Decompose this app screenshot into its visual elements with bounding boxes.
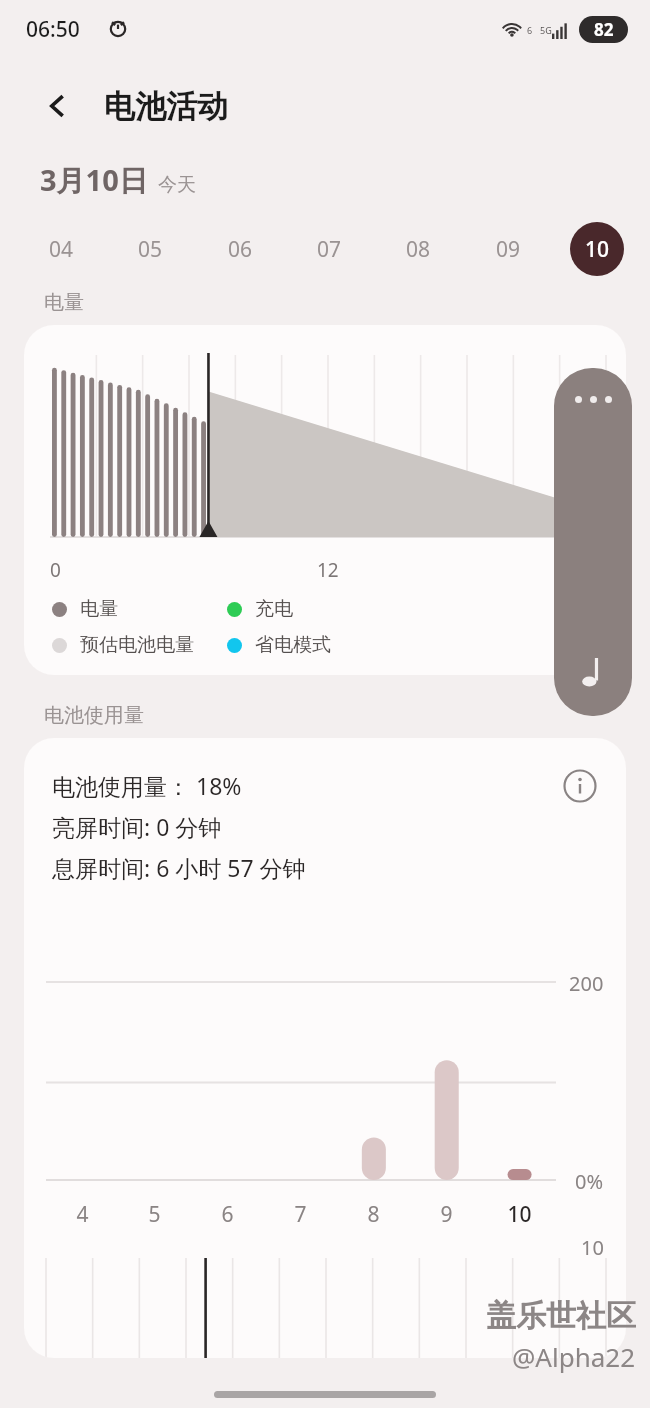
staticText: 电量 bbox=[80, 597, 118, 621]
button[interactable]: 09 bbox=[481, 222, 535, 276]
staticText: 电量 bbox=[44, 290, 84, 315]
button[interactable]: Back bbox=[36, 84, 80, 128]
staticText: 充电 bbox=[255, 597, 293, 621]
staticText: 10 bbox=[585, 235, 610, 264]
button[interactable]: 10 bbox=[570, 222, 624, 276]
staticText: 息屏时间: 6 小时 57 分钟 bbox=[52, 852, 306, 883]
staticText: 预估电池电量 bbox=[80, 633, 194, 657]
staticText: 200 bbox=[569, 970, 604, 997]
button[interactable]: Edge panel bbox=[554, 368, 632, 716]
staticText: 06:50 bbox=[26, 15, 80, 44]
staticText: 4 bbox=[76, 1200, 89, 1229]
button[interactable]: 04 bbox=[34, 222, 88, 276]
staticText: 09 bbox=[496, 235, 521, 264]
staticText: 盖乐世社区 bbox=[486, 1297, 636, 1335]
staticText: 05 bbox=[138, 235, 163, 264]
staticText: @Alpha22 bbox=[512, 1339, 636, 1374]
staticText: 9 bbox=[440, 1200, 453, 1229]
staticText: 3月10日 bbox=[40, 160, 148, 200]
staticText: 8 bbox=[367, 1200, 380, 1229]
staticText: 省电模式 bbox=[255, 633, 331, 657]
staticText: 10 bbox=[581, 1234, 604, 1261]
button[interactable]: 07 bbox=[302, 222, 356, 276]
button[interactable]: 电池使用量： 18% bbox=[24, 738, 626, 1358]
staticText: 5G bbox=[540, 24, 552, 36]
staticText: 6 bbox=[527, 24, 533, 36]
staticText: 10 bbox=[507, 1200, 532, 1229]
staticText: 电池使用量： 18% bbox=[52, 770, 242, 801]
staticText: 0% bbox=[575, 1168, 604, 1195]
staticText: 电池活动 bbox=[104, 87, 228, 126]
button[interactable]: 0 bbox=[24, 325, 626, 675]
staticText: 今天 bbox=[158, 173, 196, 197]
staticText: 6 bbox=[221, 1200, 234, 1229]
staticText: 0 bbox=[50, 557, 61, 583]
staticText: 82 bbox=[594, 18, 614, 41]
staticText: 12 bbox=[317, 557, 339, 583]
button[interactable]: 06 bbox=[213, 222, 267, 276]
staticText: 06 bbox=[228, 235, 253, 264]
button[interactable]: 08 bbox=[391, 222, 445, 276]
staticText: 5 bbox=[148, 1200, 161, 1229]
staticText: 7 bbox=[294, 1200, 307, 1229]
staticText: 07 bbox=[317, 235, 342, 264]
button[interactable]: 05 bbox=[123, 222, 177, 276]
staticText: 04 bbox=[49, 235, 74, 264]
staticText: 亮屏时间: 0 分钟 bbox=[52, 811, 222, 842]
staticText: 08 bbox=[406, 235, 431, 264]
staticText: 电池使用量 bbox=[44, 703, 144, 728]
button[interactable]: Info bbox=[556, 762, 604, 810]
